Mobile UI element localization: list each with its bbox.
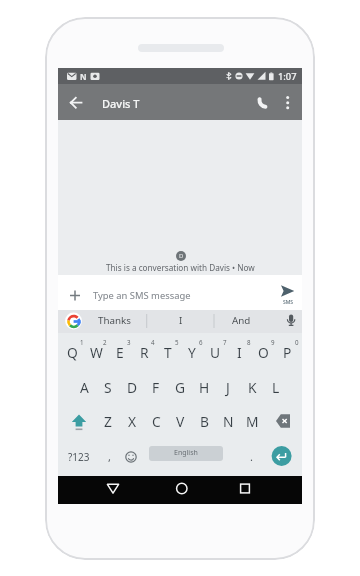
staticText: H [199,378,210,397]
staticText: D [127,378,138,397]
staticText: K [248,378,257,397]
staticText: 4 [151,338,155,346]
staticText: This is a conversation with Davis • Now [106,262,255,273]
staticText: X [128,412,137,431]
staticText: Z [104,412,112,431]
staticText: 9 [271,338,275,346]
staticText: M [246,412,259,431]
staticText: U [210,343,221,362]
staticText: G [175,378,186,397]
staticText: P [283,343,292,362]
button[interactable] [279,310,302,333]
staticText: J [226,378,230,397]
staticText: A [80,378,89,397]
staticText: T [164,343,172,362]
staticText: 0 [295,338,299,346]
staticText: , [108,449,111,464]
button[interactable] [271,445,292,466]
staticText: O [258,343,269,362]
staticText: 6 [199,338,203,346]
staticText: Y [188,343,196,362]
staticText: 2 [103,338,107,346]
staticText: Thanks [98,314,131,327]
staticText: V [176,412,185,431]
staticText: W [90,343,103,362]
staticText: Type an SMS message [93,289,191,302]
staticText: E [116,343,124,362]
button[interactable] [215,310,277,333]
staticText: 7 [223,338,227,346]
staticText: 5 [175,338,179,346]
staticText: 1:07 [278,70,297,83]
staticText: English [174,448,198,458]
button[interactable] [278,86,300,118]
staticText: N [223,412,234,431]
staticText: R [140,343,149,362]
staticText: And [232,314,251,327]
button[interactable] [58,310,88,333]
staticText: B [200,412,209,431]
staticText: D [179,252,184,260]
staticText: 8 [247,338,251,346]
staticText: Davis T [102,96,140,111]
staticText: Q [67,343,78,362]
staticText: 1 [80,338,84,346]
staticText: ?123 [68,450,90,464]
staticText: N [80,71,87,82]
staticText: S [104,378,112,397]
button[interactable] [149,446,223,461]
staticText: 3 [127,338,131,346]
button[interactable] [274,277,302,308]
button[interactable] [165,476,199,504]
button[interactable] [88,310,145,333]
button[interactable] [248,86,278,118]
staticText: L [272,378,280,397]
staticText: I [237,343,242,362]
button[interactable] [58,84,94,120]
button[interactable] [60,278,90,308]
staticText: I [179,314,183,327]
button[interactable] [64,439,93,466]
button[interactable] [228,476,262,504]
staticText: . [250,449,253,464]
staticText: F [152,378,160,397]
staticText: SMS [283,299,294,306]
button[interactable] [147,310,213,333]
staticText: C [152,412,161,431]
button[interactable] [96,476,130,504]
